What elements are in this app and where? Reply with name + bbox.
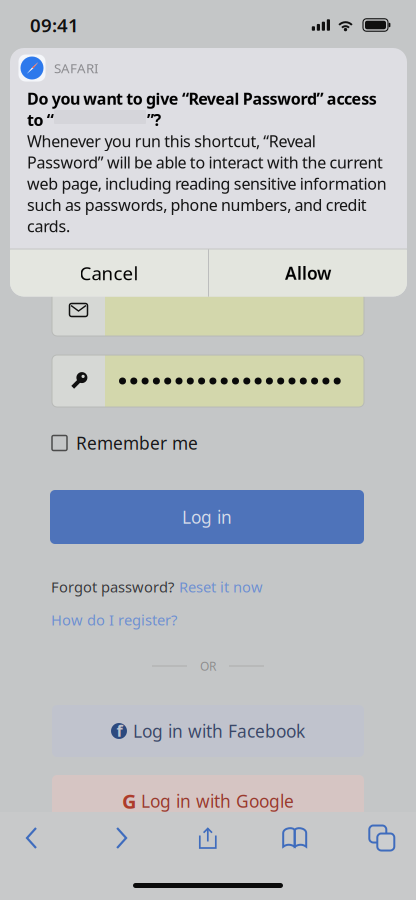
button[interactable]: G xyxy=(52,775,364,827)
staticText: SAFARI xyxy=(54,59,99,77)
staticText: G xyxy=(122,788,136,814)
staticText: Log in with Facebook xyxy=(133,719,305,742)
staticText: OR xyxy=(200,658,216,674)
button[interactable]: Forward xyxy=(91,816,153,860)
button[interactable]: Tabs xyxy=(351,816,413,860)
staticText: Log in xyxy=(182,505,232,528)
staticText: Forgot password? xyxy=(51,577,174,596)
button[interactable]: Remember me xyxy=(52,432,198,454)
staticText: Allow xyxy=(285,261,331,284)
button[interactable]: f xyxy=(52,705,364,757)
staticText: Whenever you run this shortcut, “Reveal … xyxy=(27,130,387,237)
staticText: How do I register? xyxy=(51,610,177,629)
staticText: Remember me xyxy=(76,431,198,454)
button[interactable]: How do I register? xyxy=(51,610,177,629)
button[interactable]: Reset it now xyxy=(179,577,263,596)
staticText: Cancel xyxy=(80,261,139,285)
staticText: f xyxy=(116,720,122,741)
staticText: Log in with Google xyxy=(141,789,294,812)
button[interactable]: Back xyxy=(0,816,62,860)
button[interactable]: Log in xyxy=(50,490,364,544)
button[interactable]: Bookmarks xyxy=(264,816,326,860)
button[interactable]: Allow xyxy=(209,249,407,296)
button[interactable]: Cancel xyxy=(10,249,208,296)
button[interactable]: Share xyxy=(177,816,239,860)
staticText: Do you want to give “Reveal Password” ac… xyxy=(27,88,377,130)
staticText: Reset it now xyxy=(179,577,263,596)
staticText: 09:41 xyxy=(30,13,79,37)
